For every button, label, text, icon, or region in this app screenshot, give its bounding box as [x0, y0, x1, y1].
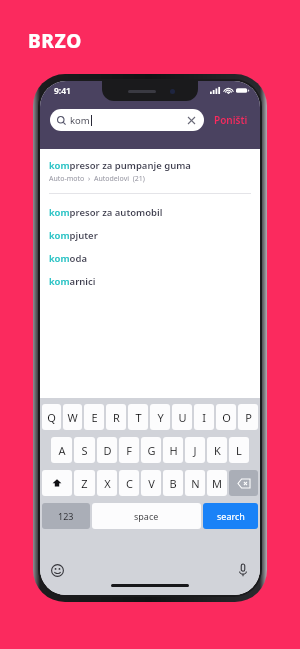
button[interactable]: Z — [74, 470, 95, 496]
staticText: E — [91, 410, 98, 425]
button[interactable]: komoda — [40, 247, 260, 270]
button[interactable]: N — [185, 470, 205, 496]
staticText: H — [169, 443, 178, 458]
button[interactable]: Poništi — [212, 111, 250, 129]
staticText: F — [126, 443, 132, 458]
staticText: I — [202, 410, 206, 425]
button[interactable]: kom — [50, 109, 204, 131]
button[interactable]: W — [63, 404, 82, 430]
button[interactable]: C — [119, 470, 139, 496]
staticText: Q — [47, 410, 56, 425]
button[interactable]: X — [97, 470, 117, 496]
button[interactable]: B — [163, 470, 183, 496]
button[interactable]: 123 — [42, 503, 90, 529]
button[interactable]: Voice input — [234, 561, 252, 579]
button[interactable]: Emoji — [48, 561, 66, 579]
staticText: Y — [157, 410, 164, 425]
button[interactable]: T — [128, 404, 148, 430]
staticText: U — [178, 410, 187, 425]
button[interactable]: E — [84, 404, 104, 430]
button[interactable]: space — [92, 503, 201, 529]
button[interactable]: R — [106, 404, 126, 430]
staticText: P — [245, 410, 252, 425]
button[interactable]: kompjuter — [40, 224, 260, 247]
staticText: T — [135, 410, 142, 425]
staticText: B — [169, 476, 177, 491]
button[interactable]: M — [207, 470, 227, 496]
staticText: K — [214, 443, 221, 458]
button[interactable]: O — [216, 404, 236, 430]
button[interactable]: G — [141, 437, 161, 463]
staticText: kompjuter — [49, 229, 98, 242]
staticText: komarnici — [49, 275, 96, 288]
button[interactable]: V — [141, 470, 161, 496]
staticText: 123 — [58, 510, 74, 522]
staticText: W — [67, 410, 78, 425]
staticText: Auto-moto — [49, 174, 85, 184]
staticText: L — [236, 443, 242, 458]
button[interactable]: U — [172, 404, 192, 430]
staticText: A — [58, 443, 66, 458]
staticText: › — [88, 174, 91, 184]
button[interactable]: Shift — [42, 470, 72, 496]
staticText: BRZO — [28, 28, 82, 54]
button[interactable]: Q — [42, 404, 61, 430]
button[interactable]: D — [97, 437, 117, 463]
button[interactable]: I — [194, 404, 214, 430]
staticText: Autodelovi (21) — [94, 174, 145, 184]
staticText: kompresor za pumpanje guma — [49, 159, 191, 172]
button[interactable]: L — [229, 437, 249, 463]
button[interactable]: komarnici — [40, 270, 260, 293]
staticText: Z — [81, 476, 88, 491]
button[interactable]: kompresor za pumpanje guma — [40, 156, 260, 187]
button[interactable]: search — [203, 503, 258, 529]
staticText: G — [147, 443, 156, 458]
staticText: C — [126, 476, 133, 491]
staticText: search — [217, 510, 245, 522]
button[interactable]: K — [207, 437, 227, 463]
button[interactable]: S — [74, 437, 95, 463]
staticText: kompresor za automobil — [49, 206, 163, 219]
button[interactable]: Y — [150, 404, 170, 430]
button[interactable]: H — [163, 437, 183, 463]
button[interactable]: kompresor za automobil — [40, 201, 260, 224]
staticText: D — [103, 443, 112, 458]
staticText: X — [104, 476, 111, 491]
button[interactable]: A — [51, 437, 72, 463]
staticText: space — [134, 510, 159, 522]
staticText: R — [113, 410, 120, 425]
button[interactable]: Clear search — [185, 114, 197, 126]
staticText: 9:41 — [54, 85, 71, 97]
staticText: kom — [70, 114, 90, 127]
button[interactable]: J — [185, 437, 205, 463]
staticText: J — [193, 443, 197, 458]
staticText: O — [222, 410, 231, 425]
staticText: S — [81, 443, 88, 458]
staticText: V — [148, 476, 155, 491]
button[interactable]: Backspace — [229, 470, 258, 496]
button[interactable]: P — [238, 404, 258, 430]
button[interactable]: F — [119, 437, 139, 463]
staticText: M — [212, 476, 222, 491]
staticText: Poništi — [214, 113, 248, 127]
staticText: N — [191, 476, 200, 491]
staticText: komoda — [49, 252, 87, 265]
